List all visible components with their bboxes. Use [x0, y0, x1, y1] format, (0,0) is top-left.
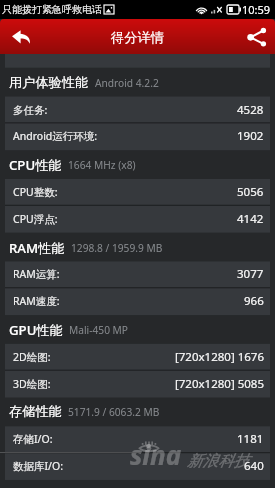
- staticText: 10:59: [242, 2, 271, 17]
- staticText: RAM速度:: [13, 294, 60, 308]
- button[interactable]: 数据库I/O:: [13, 452, 264, 479]
- staticText: Android 4.2.2: [95, 76, 159, 90]
- staticText: [720x1280] 5085: [175, 376, 264, 392]
- staticText: GPU性能: [9, 321, 63, 339]
- staticText: 640: [244, 458, 264, 474]
- button[interactable]: 3D绘图:: [13, 370, 264, 397]
- staticText: [720x1280] 1676: [175, 349, 264, 365]
- button[interactable]: RAM速度:: [13, 287, 264, 314]
- staticText: 5056: [237, 184, 264, 200]
- staticText: Mali-450 MP: [69, 323, 129, 337]
- staticText: 5171.9 / 6063.2 MB: [68, 405, 160, 419]
- button[interactable]: Android运行环境:: [13, 122, 264, 149]
- button[interactable]: CPU整数:: [13, 178, 264, 205]
- staticText: 3077: [237, 266, 264, 282]
- staticText: 966: [244, 293, 264, 309]
- staticText: 新浪科技: [187, 451, 250, 471]
- staticText: 1664 MHz (x8): [68, 158, 136, 172]
- staticText: 得分详情: [111, 29, 164, 46]
- button[interactable]: RAM运算:: [13, 260, 264, 287]
- staticText: RAM运算:: [13, 267, 60, 281]
- staticText: 4528: [237, 102, 264, 118]
- staticText: CPU性能: [9, 156, 62, 174]
- staticText: 存储性能: [9, 403, 62, 420]
- staticText: 只能拨打紧急呼救电话: [2, 3, 102, 16]
- staticText: 用户体验性能: [9, 74, 89, 91]
- staticText: 1181: [237, 431, 264, 447]
- button[interactable]: Share: [239, 19, 275, 54]
- button[interactable]: CPU浮点:: [13, 205, 264, 232]
- staticText: CPU浮点:: [13, 212, 58, 226]
- staticText: 4142: [237, 211, 264, 227]
- staticText: 2D绘图:: [13, 350, 51, 364]
- staticText: Android运行环境:: [13, 129, 98, 143]
- staticText: 1902: [237, 128, 264, 144]
- staticText: sina: [130, 437, 182, 472]
- button[interactable]: 存储I/O:: [13, 425, 264, 452]
- staticText: RAM性能: [9, 239, 65, 257]
- staticText: 1298.8 / 1959.9 MB: [71, 241, 163, 255]
- staticText: CPU整数:: [13, 185, 58, 199]
- staticText: 3D绘图:: [13, 377, 51, 391]
- staticText: 多任务:: [13, 103, 48, 117]
- button[interactable]: 多任务:: [13, 96, 264, 123]
- button[interactable]: 2D绘图:: [13, 343, 264, 370]
- button[interactable]: Back: [0, 19, 42, 54]
- staticText: 存储I/O:: [13, 432, 53, 446]
- staticText: 数据库I/O:: [13, 459, 63, 473]
